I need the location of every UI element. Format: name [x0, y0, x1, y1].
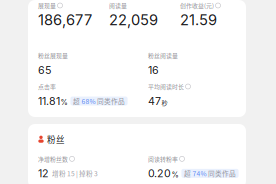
staticText: 74% [192, 168, 206, 178]
staticText: 点击率 [38, 82, 56, 91]
staticText: 粉丝展现量 [38, 51, 68, 60]
staticText: 68% [81, 96, 95, 106]
staticText: 超 [73, 96, 80, 106]
staticText: 12 [38, 167, 49, 180]
staticText: 16 [148, 63, 159, 76]
staticText: 净增粉丝数 [38, 155, 68, 163]
staticText: 186,677 [38, 11, 92, 29]
staticText: 秒 [161, 98, 167, 107]
staticText: 同类作品 [208, 168, 236, 178]
staticText: 同类作品 [97, 96, 125, 106]
staticText: 平均阅读时长 [148, 82, 184, 91]
staticText: 47 [148, 94, 161, 107]
staticText: 阅读转粉率 [148, 155, 178, 163]
staticText: % [60, 98, 67, 107]
staticText: 增粉 15 | 掉粉 3 [52, 168, 98, 178]
staticText: 65 [38, 63, 51, 76]
staticText: 11.81 [38, 94, 60, 107]
staticText: 粉丝阅读量 [148, 51, 178, 60]
staticText: 22,059 [109, 11, 158, 29]
staticText: 展现量 [38, 1, 56, 10]
staticText: 阅读量 [109, 1, 127, 10]
staticText: 超 [184, 168, 191, 178]
staticText: 创作收益(元) [180, 1, 214, 10]
button[interactable]: 展现量 [28, 0, 246, 117]
button[interactable]: 粉丝 [28, 124, 246, 184]
staticText: 粉丝 [47, 133, 65, 145]
staticText: % [171, 170, 178, 179]
staticText: 21.59 [180, 11, 217, 29]
staticText: 0.20 [148, 167, 171, 180]
